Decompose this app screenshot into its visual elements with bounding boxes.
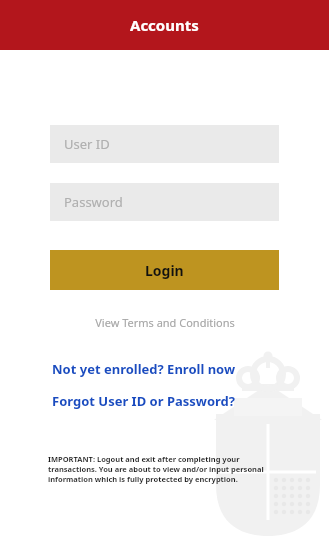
staticText: Login — [145, 261, 184, 280]
staticText: Forgot User ID or Password? — [52, 392, 236, 410]
button[interactable]: View Terms and Conditions — [0, 315, 329, 330]
staticText: Password — [64, 193, 123, 211]
button[interactable]: Forgot User ID or Password? — [52, 392, 277, 410]
button[interactable]: Password — [50, 183, 279, 221]
button[interactable]: User ID — [50, 125, 279, 163]
staticText: View Terms and Conditions — [95, 315, 235, 330]
staticText: Not yet enrolled? Enroll now — [52, 360, 236, 378]
button[interactable]: Login — [50, 250, 279, 290]
staticText: User ID — [64, 135, 110, 153]
staticText: Accounts — [130, 15, 199, 35]
staticText: IMPORTANT: Logout and exit after complet… — [48, 454, 269, 484]
button[interactable]: Not yet enrolled? Enroll now — [52, 360, 277, 378]
